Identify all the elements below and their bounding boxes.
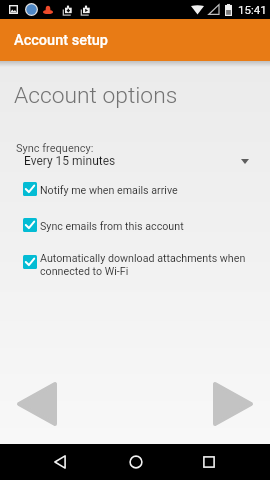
staticText: Sync frequency: xyxy=(16,142,94,155)
button[interactable]: Back xyxy=(36,444,84,480)
button[interactable]: Every 15 minutes xyxy=(0,152,270,172)
staticText: Account options xyxy=(14,82,178,109)
staticText: Notify me when emails arrive xyxy=(40,184,178,197)
button[interactable]: Home xyxy=(112,444,160,480)
staticText: Automatically download attachments when xyxy=(40,252,246,265)
button[interactable]: Account setup xyxy=(0,19,270,61)
staticText: Sync emails from this account xyxy=(40,220,184,233)
button[interactable]: Recent apps xyxy=(185,444,233,480)
button[interactable]: Next xyxy=(209,378,257,430)
button[interactable]: Automatically download attachments when xyxy=(0,248,270,282)
button[interactable]: Sync emails from this account xyxy=(0,211,270,239)
staticText: Account setup xyxy=(14,32,108,49)
staticText: 15:41 xyxy=(238,3,267,16)
staticText: connected to Wi-Fi xyxy=(40,265,129,278)
button[interactable]: Notify me when emails arrive xyxy=(0,175,270,203)
button[interactable]: Previous xyxy=(13,378,61,430)
staticText: Every 15 minutes xyxy=(24,154,116,168)
